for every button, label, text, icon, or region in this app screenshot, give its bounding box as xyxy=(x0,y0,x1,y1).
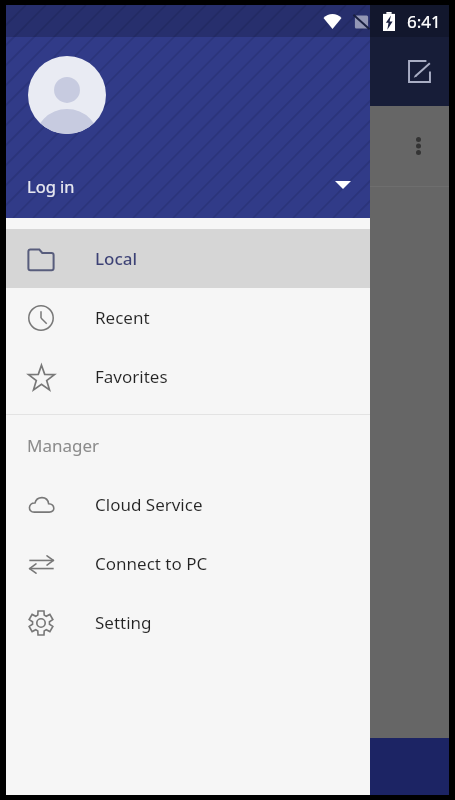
staticText: Local xyxy=(95,247,138,270)
button[interactable]: Connect to PC xyxy=(6,534,370,593)
staticText: Favorites xyxy=(95,365,168,388)
button[interactable]: Favorites xyxy=(6,347,370,406)
button[interactable]: More options xyxy=(396,124,440,168)
button[interactable]: Cloud Service xyxy=(6,475,370,534)
staticText: Manager xyxy=(27,434,100,457)
button[interactable]: Local xyxy=(6,229,370,288)
staticText: Recent xyxy=(95,306,150,329)
staticText: Setting xyxy=(95,611,152,634)
staticText: Log in xyxy=(27,175,75,197)
button[interactable]: Switch account xyxy=(327,169,359,201)
staticText: Connect to PC xyxy=(95,552,208,575)
button[interactable]: Setting xyxy=(6,593,370,652)
button[interactable]: Recent xyxy=(6,288,370,347)
staticText: 6:41 xyxy=(407,10,441,33)
button[interactable]: Edit xyxy=(396,48,442,94)
staticText: Cloud Service xyxy=(95,493,203,516)
